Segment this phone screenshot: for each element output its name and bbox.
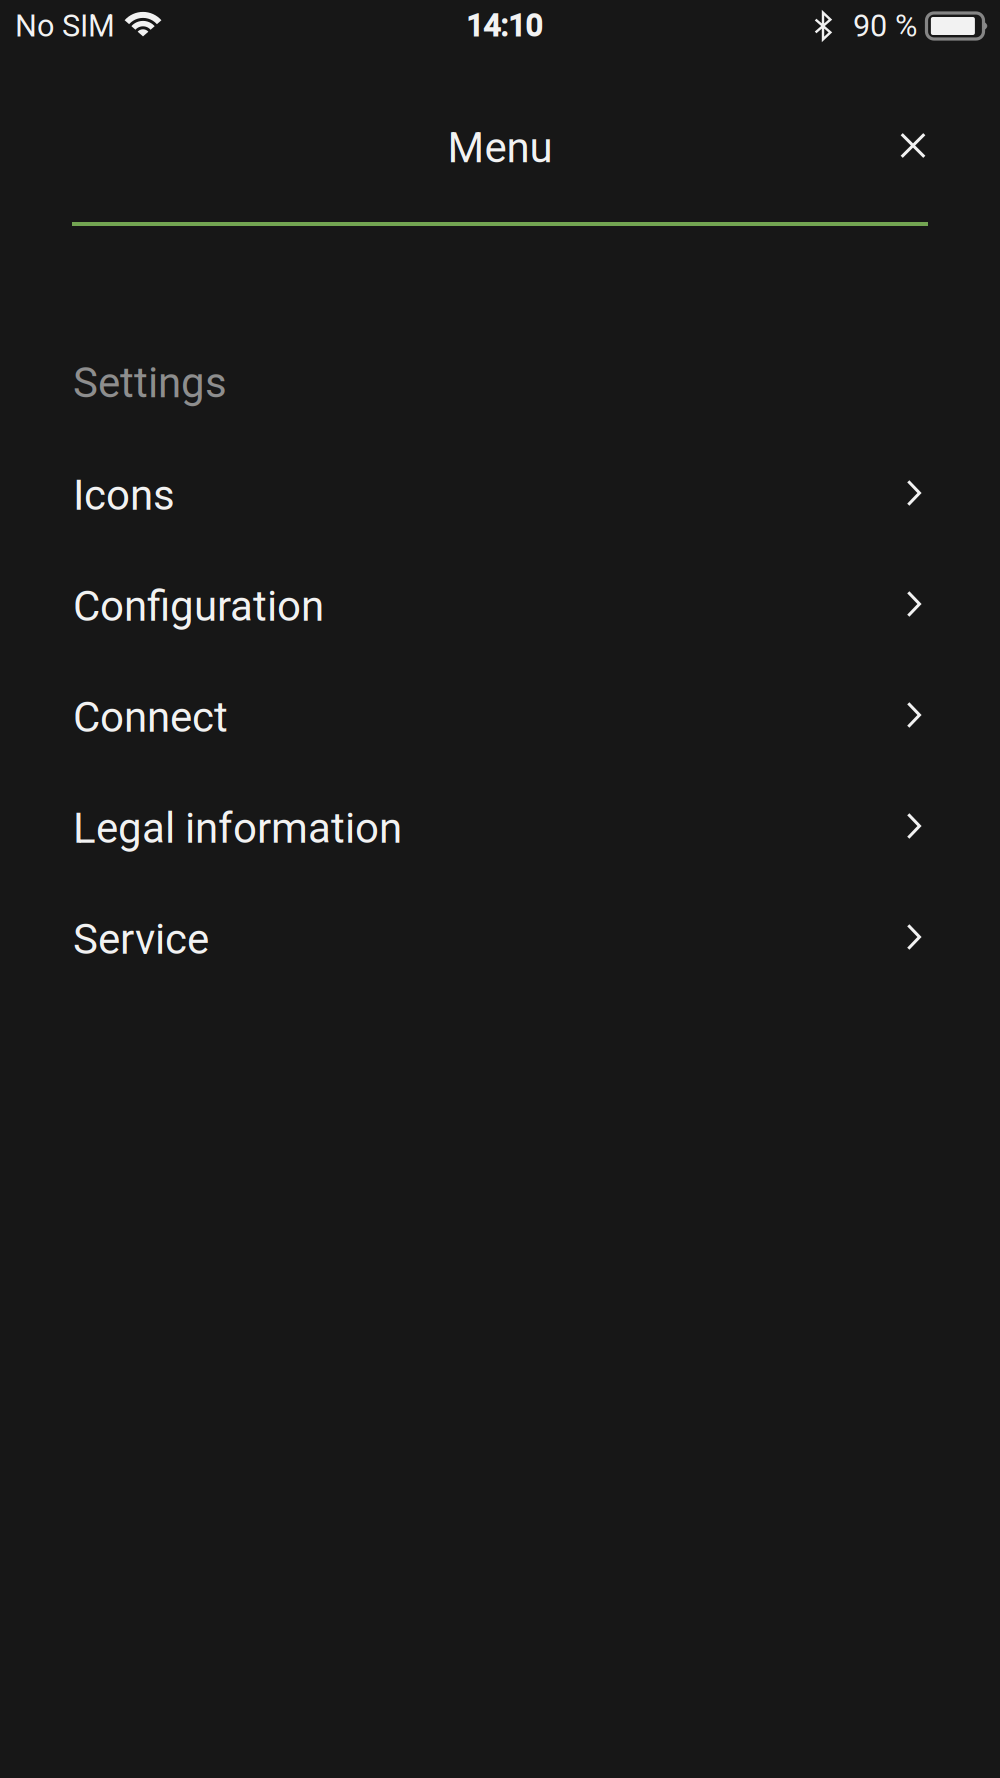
button[interactable]: Legal information — [0, 773, 1000, 884]
button[interactable]: Service — [0, 884, 1000, 995]
button[interactable]: Configuration — [0, 551, 1000, 662]
staticText: No SIM — [15, 8, 115, 44]
staticText: 90 % — [853, 8, 917, 44]
button[interactable]: Icons — [0, 440, 1000, 551]
staticText: Legal information — [73, 804, 402, 853]
button[interactable]: Close — [877, 112, 949, 184]
staticText: Connect — [73, 693, 228, 742]
staticText: Service — [73, 915, 209, 964]
staticText: Settings — [73, 358, 227, 408]
staticText: Menu — [447, 123, 552, 173]
staticText: Configuration — [73, 582, 324, 631]
button[interactable]: Connect — [0, 662, 1000, 773]
staticText: Icons — [73, 471, 175, 520]
staticText: 14:10 — [466, 8, 542, 44]
